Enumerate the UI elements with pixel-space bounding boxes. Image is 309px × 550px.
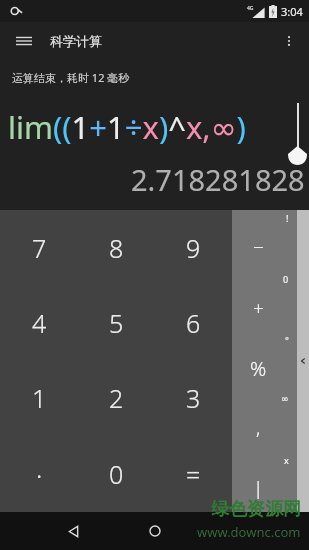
staticText: 4G bbox=[247, 5, 254, 12]
button[interactable]: x bbox=[232, 452, 297, 512]
staticText: · bbox=[36, 457, 43, 492]
button[interactable]: 2 bbox=[78, 360, 155, 436]
staticText: + bbox=[253, 295, 264, 321]
staticText: 绿色资源网 bbox=[211, 498, 301, 521]
staticText: www.downc.com bbox=[197, 523, 301, 541]
button[interactable]: 8 bbox=[78, 210, 155, 285]
button[interactable]: 1 bbox=[0, 360, 78, 436]
staticText: 5 bbox=[109, 306, 124, 340]
staticText: 4 bbox=[32, 306, 47, 340]
button[interactable]: 5 bbox=[78, 285, 155, 360]
button[interactable]: 3 bbox=[155, 360, 232, 436]
button[interactable]: 9 bbox=[155, 210, 232, 285]
button[interactable]: Home bbox=[138, 514, 172, 548]
staticText: 8 bbox=[109, 231, 124, 265]
staticText: x bbox=[284, 454, 289, 466]
staticText: ° bbox=[285, 334, 289, 346]
button[interactable]: 6 bbox=[155, 285, 232, 360]
button[interactable]: Open panel bbox=[297, 210, 309, 512]
staticText: 0 bbox=[283, 273, 289, 285]
button[interactable]: More options bbox=[275, 27, 303, 55]
staticText: 9 bbox=[186, 231, 201, 265]
staticText: % bbox=[250, 355, 267, 382]
staticText: − bbox=[253, 234, 264, 260]
staticText: | bbox=[253, 475, 264, 501]
staticText: ∞ bbox=[281, 394, 289, 404]
staticText: 7 bbox=[32, 231, 47, 265]
button[interactable]: Back bbox=[56, 514, 90, 548]
button[interactable]: Menu bbox=[10, 27, 38, 55]
button[interactable]: ° bbox=[232, 332, 297, 392]
staticText: 2.718281828 bbox=[131, 160, 305, 199]
button[interactable]: ∞ bbox=[232, 392, 297, 452]
button[interactable]: 0 bbox=[232, 271, 297, 332]
staticText: = bbox=[186, 457, 201, 491]
staticText: lim((1+1÷x)^x,∞) bbox=[8, 106, 246, 148]
staticText: , bbox=[256, 415, 261, 441]
staticText: 运算结束，耗时 12 毫秒 bbox=[12, 70, 130, 85]
button[interactable]: 4 bbox=[0, 285, 78, 360]
staticText: 3 bbox=[186, 381, 201, 415]
staticText: 科学计算 bbox=[50, 33, 102, 49]
button[interactable]: 0 bbox=[78, 436, 155, 512]
staticText: ! bbox=[286, 212, 289, 224]
button[interactable]: ! bbox=[232, 210, 297, 271]
staticText: 0 bbox=[109, 457, 124, 491]
staticText: 2 bbox=[109, 381, 124, 415]
button[interactable]: 7 bbox=[0, 210, 78, 285]
staticText: 1 bbox=[32, 381, 47, 415]
staticText: 6 bbox=[186, 306, 201, 340]
staticText: 3:04 bbox=[281, 4, 303, 19]
button[interactable]: = bbox=[155, 436, 232, 512]
button[interactable]: · bbox=[0, 436, 78, 512]
